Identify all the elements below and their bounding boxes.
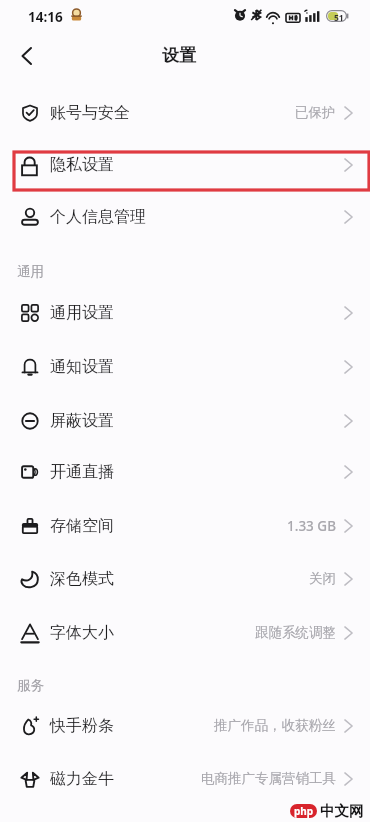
staticText: 电商推广专属营销工具 <box>201 770 336 787</box>
staticText: 服务 <box>17 677 44 694</box>
button[interactable]: 深色模式 <box>0 553 370 604</box>
staticText: 隐私设置 <box>50 155 114 175</box>
button[interactable]: 存储空间 <box>0 500 370 551</box>
button[interactable]: 字体大小 <box>0 607 370 658</box>
staticText: 通用设置 <box>50 303 114 323</box>
button[interactable]: 屏蔽设置 <box>0 395 370 446</box>
staticText: 推广作品，收获粉丝 <box>214 717 336 734</box>
button[interactable]: 通知设置 <box>0 341 370 392</box>
staticText: php <box>294 804 314 818</box>
staticText: 字体大小 <box>50 623 114 643</box>
staticText: 账号与安全 <box>50 103 130 123</box>
staticText: 个人信息管理 <box>50 207 146 227</box>
staticText: 快手粉条 <box>50 716 114 736</box>
button[interactable]: 个人信息管理 <box>0 191 370 242</box>
staticText: 关闭 <box>309 570 336 587</box>
staticText: 跟随系统调整 <box>255 624 336 641</box>
button[interactable]: 通用设置 <box>0 287 370 338</box>
staticText: 深色模式 <box>50 569 114 589</box>
staticText: 通用 <box>17 263 44 280</box>
staticText: 开通直播 <box>50 462 114 482</box>
staticText: 屏蔽设置 <box>50 411 114 431</box>
staticText: 1.33 GB <box>287 517 336 535</box>
staticText: 磁力金牛 <box>50 769 114 789</box>
staticText: 通知设置 <box>50 357 114 377</box>
button[interactable]: 快手粉条 <box>0 700 370 751</box>
staticText: 设置 <box>162 45 196 66</box>
staticText: 存储空间 <box>50 516 114 536</box>
button[interactable]: 开通直播 <box>0 446 370 497</box>
button[interactable]: Back <box>8 38 44 74</box>
staticText: 已保护 <box>295 104 336 121</box>
button[interactable]: 账号与安全 <box>0 87 370 138</box>
staticText: 中文网 <box>320 802 364 820</box>
button[interactable]: 隐私设置 <box>0 139 370 190</box>
staticText: 14:16 <box>28 8 63 26</box>
staticText: 51 <box>334 12 344 24</box>
button[interactable]: 磁力金牛 <box>0 753 370 804</box>
